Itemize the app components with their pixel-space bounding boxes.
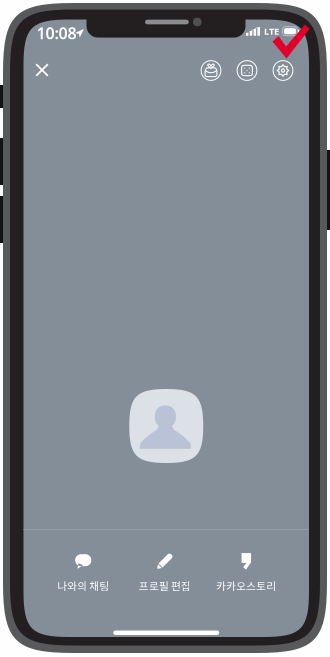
staticText: 10:08 xyxy=(36,22,76,44)
button[interactable]: 프로필 편집 xyxy=(124,551,205,595)
button[interactable]: My QR code xyxy=(233,56,261,84)
staticText: 나와의 채팅 xyxy=(57,578,109,593)
button[interactable]: Close xyxy=(27,55,57,85)
button[interactable]: 카카오스토리 xyxy=(205,551,287,595)
button[interactable]: Gift shop xyxy=(197,56,225,84)
staticText: 프로필 편집 xyxy=(139,578,191,593)
button[interactable]: Settings xyxy=(269,56,297,84)
button[interactable]: 나와의 채팅 xyxy=(42,551,124,595)
staticText: LTE xyxy=(264,25,279,37)
staticText: 카카오스토리 xyxy=(216,578,276,593)
